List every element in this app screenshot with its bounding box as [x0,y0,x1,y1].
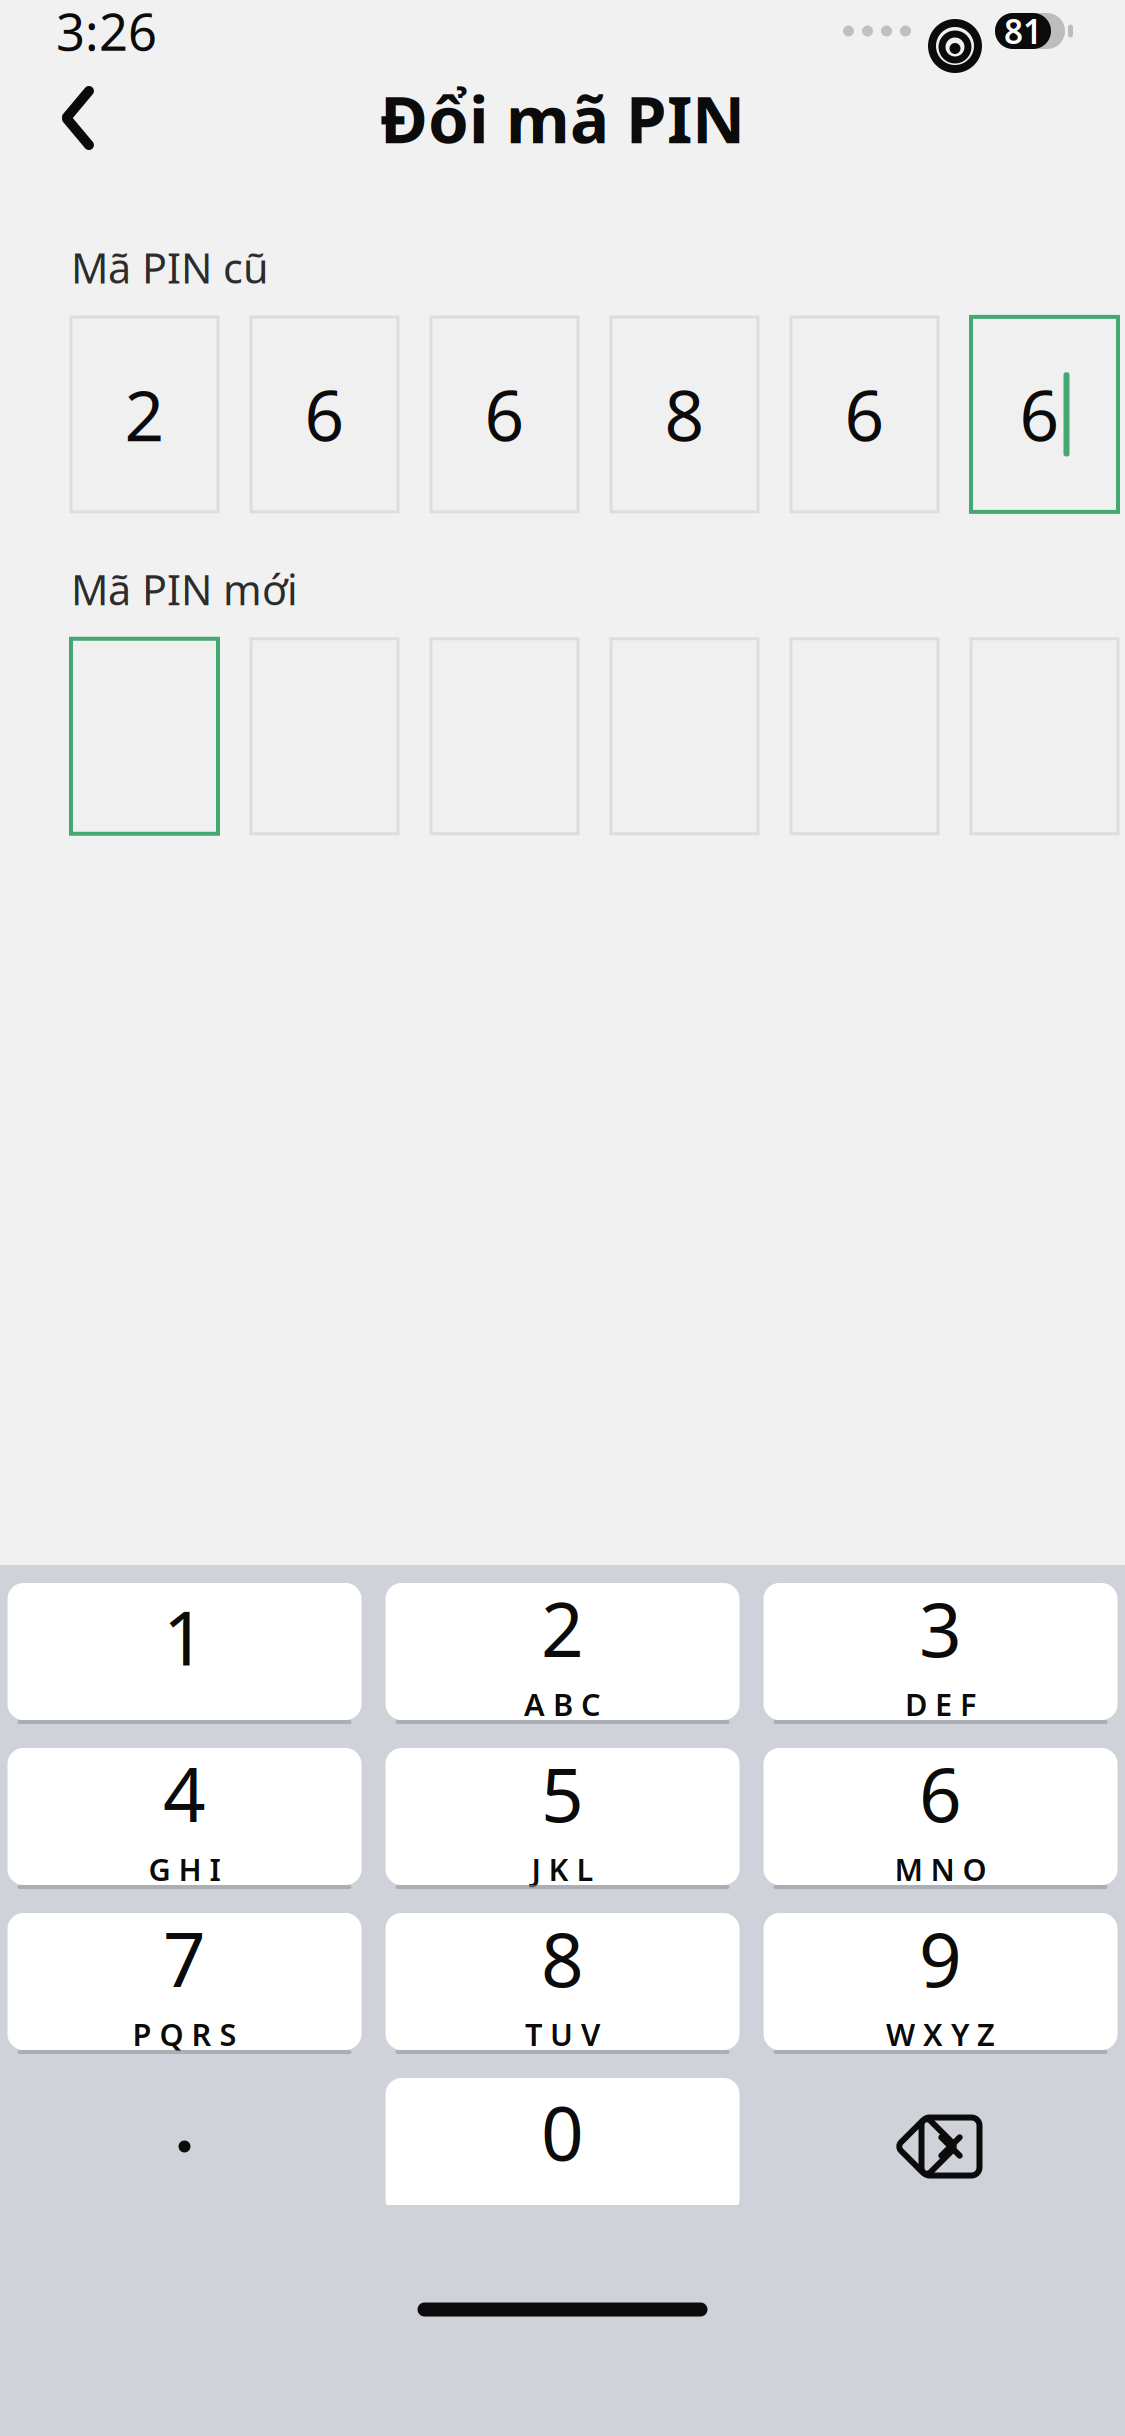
button[interactable]: PIN digit 2 [251,639,398,834]
button[interactable]: PIN digit 6 [971,317,1118,512]
button[interactable]: PIN digit 4 [611,317,758,512]
button[interactable]: PIN digit 6 [971,639,1118,834]
staticText: W X Y Z [886,2014,995,2054]
button[interactable]: 1 [7,1583,361,1720]
button[interactable]: PIN digit 5 [791,317,938,512]
staticText: T U V [525,2014,600,2054]
staticText: 6 [844,368,884,460]
staticText: 1 [163,1587,206,1686]
staticText: G H I [148,1849,220,1889]
staticText: 6 [304,368,344,460]
button[interactable]: PIN digit 1 [71,317,218,512]
button[interactable]: 9 [763,1913,1117,2050]
button[interactable]: 6 [763,1748,1117,1885]
staticText: 3:26 [56,0,157,65]
staticText: 6 [919,1744,962,1843]
button[interactable]: Back [30,70,126,166]
button[interactable]: 3 [763,1583,1117,1720]
staticText: 2 [124,368,164,460]
button[interactable]: PIN digit 1 [71,639,218,834]
button[interactable]: 4 [7,1748,361,1885]
staticText: Mã PIN cũ [71,240,269,295]
staticText: 5 [541,1744,584,1843]
staticText: A B C [524,1684,601,1724]
button[interactable]: 2 [385,1583,739,1720]
staticText: M N O [894,1849,986,1889]
staticText: 9 [919,1909,962,2008]
staticText: D E F [905,1684,976,1724]
staticText: 8 [664,368,704,460]
staticText: 0 [541,2082,584,2181]
button[interactable]: 7 [7,1913,361,2050]
staticText: 6 [1019,368,1059,460]
button[interactable]: PIN digit 2 [251,317,398,512]
button[interactable]: 5 [385,1748,739,1885]
staticText: 4 [163,1744,206,1843]
staticText: J K L [531,1849,593,1889]
button[interactable]: 0 [385,2078,739,2215]
button[interactable]: Delete [763,2078,1117,2215]
button[interactable]: PIN digit 3 [431,317,578,512]
button[interactable]: PIN digit 5 [791,639,938,834]
staticText: 2 [541,1579,584,1678]
staticText: 81 [1004,9,1042,53]
staticText: Mã PIN mới [71,562,298,617]
button[interactable]: PIN digit 3 [431,639,578,834]
button[interactable]: 8 [385,1913,739,2050]
staticText: P Q R S [132,2014,236,2054]
staticText: 7 [163,1909,206,2008]
staticText: 3 [919,1579,962,1678]
staticText: 6 [484,368,524,460]
button[interactable]: PIN digit 4 [611,639,758,834]
staticText: Đổi mã PIN [380,75,745,161]
staticText: 8 [541,1909,584,2008]
